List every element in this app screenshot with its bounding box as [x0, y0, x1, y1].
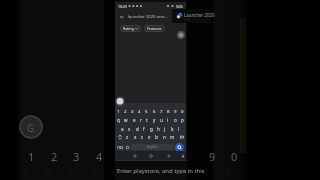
staticText: 10:23: [118, 4, 127, 9]
staticText: 7: [164, 149, 171, 163]
staticText: 8: [186, 149, 193, 163]
staticText: 4: [138, 108, 141, 114]
staticText: 0: [181, 108, 184, 114]
staticText: d: [136, 126, 139, 132]
staticText: i: [167, 117, 169, 123]
staticText: f: [143, 126, 145, 132]
staticText: 6: [153, 108, 156, 114]
button[interactable]: Search: [175, 143, 184, 152]
staticText: 2: [51, 149, 58, 163]
staticText: 0: [231, 149, 238, 163]
staticText: j: [164, 126, 166, 132]
staticText: w: [124, 117, 128, 123]
staticText: 9: [174, 108, 177, 114]
staticText: 7: [160, 108, 163, 114]
staticText: h: [157, 126, 160, 132]
staticText: x: [134, 134, 137, 140]
staticText: r: [140, 117, 142, 123]
staticText: q: [117, 117, 120, 123]
staticText: z: [126, 134, 129, 140]
staticText: 9: [209, 149, 216, 163]
staticText: s: [128, 126, 131, 132]
button[interactable]: Key: [131, 152, 138, 159]
button[interactable]: English: [131, 144, 173, 150]
staticText: l: [178, 126, 180, 132]
staticText: k: [171, 126, 174, 132]
button[interactable]: Key: [165, 152, 172, 159]
staticText: 8: [167, 108, 170, 114]
staticText: 1: [28, 149, 35, 163]
staticText: 4.1★: [184, 18, 191, 22]
button[interactable]: Search: [177, 13, 184, 20]
staticText: 56%: [176, 4, 183, 9]
button[interactable]: Rating: [123, 25, 138, 32]
staticText: launcher 2020 rese...: [128, 14, 168, 20]
staticText: n: [163, 134, 166, 140]
staticText: 3: [73, 149, 80, 163]
staticText: u: [160, 117, 163, 123]
staticText: o: [174, 117, 177, 123]
staticText: e: [133, 117, 136, 123]
staticText: q: [202, 164, 209, 176]
button[interactable]: Key: [179, 152, 186, 159]
staticText: G: [27, 121, 35, 135]
staticText: Features: [147, 26, 162, 31]
staticText: m: [170, 134, 175, 140]
button[interactable]: Symbols: [117, 144, 124, 151]
staticText: q: [112, 164, 119, 176]
staticText: Rating: [123, 26, 134, 31]
staticText: 3: [131, 108, 134, 114]
staticText: y: [153, 117, 156, 123]
button[interactable]: Features: [147, 25, 162, 32]
staticText: 6: [141, 149, 148, 163]
button[interactable]: Back: [118, 13, 125, 20]
staticText: q: [180, 164, 187, 176]
staticText: 2: [124, 108, 127, 114]
staticText: g: [150, 126, 153, 132]
staticText: 5: [145, 108, 148, 114]
staticText: Launcher 2020: [184, 12, 215, 18]
button[interactable]: Launcher 2020: [172, 9, 211, 23]
staticText: b: [155, 134, 158, 140]
staticText: c: [141, 134, 144, 140]
button[interactable]: Key: [147, 152, 154, 159]
staticText: ?123: [117, 146, 124, 150]
staticText: v: [148, 134, 151, 140]
staticText: p: [181, 117, 184, 123]
staticText: q: [135, 164, 142, 176]
staticText: 5: [118, 149, 125, 163]
button[interactable]: Language: [125, 145, 130, 150]
staticText: q: [157, 164, 164, 176]
staticText: a: [121, 126, 124, 132]
staticText: 1: [117, 108, 120, 114]
staticText: English: [147, 145, 157, 149]
staticText: t: [146, 117, 148, 123]
staticText: Enter playstore, and type in this: [117, 167, 205, 175]
staticText: 4: [96, 149, 103, 163]
